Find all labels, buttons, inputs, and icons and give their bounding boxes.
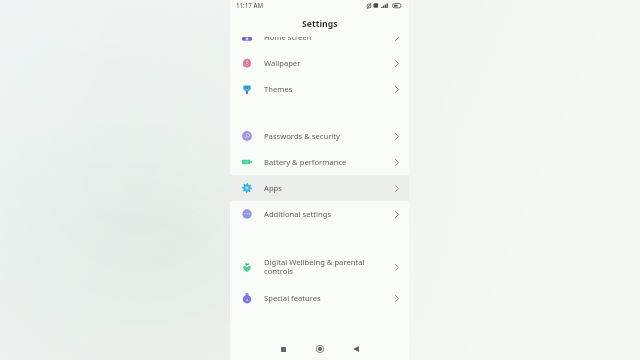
button[interactable]: Battery & performance — [230, 149, 409, 175]
staticText: Special features — [264, 293, 321, 303]
button[interactable]: Back — [344, 337, 368, 360]
staticText: Themes — [264, 84, 293, 94]
staticText: 11:17 AM — [236, 1, 264, 9]
staticText: Additional settings — [264, 209, 332, 219]
staticText: Digital Wellbeing & parental controls — [264, 257, 365, 277]
button[interactable]: Additional settings — [230, 201, 409, 227]
button[interactable]: Apps — [230, 175, 409, 201]
staticText: Passwords & security — [264, 131, 340, 141]
staticText: Wallpaper — [264, 58, 301, 68]
staticText: Settings — [302, 18, 338, 30]
button[interactable]: Home — [308, 337, 332, 360]
button[interactable]: Digital Wellbeing & parental controls — [230, 249, 409, 285]
staticText: Home screen — [264, 37, 312, 42]
button[interactable]: Themes — [230, 76, 409, 102]
button[interactable]: Wallpaper — [230, 50, 409, 76]
button[interactable]: Recents — [271, 337, 295, 360]
staticText: Battery & performance — [264, 157, 347, 167]
button[interactable]: Home screen — [230, 37, 409, 50]
button[interactable]: Special features — [230, 285, 409, 311]
button[interactable]: Passwords & security — [230, 123, 409, 149]
staticText: Apps — [264, 183, 282, 193]
